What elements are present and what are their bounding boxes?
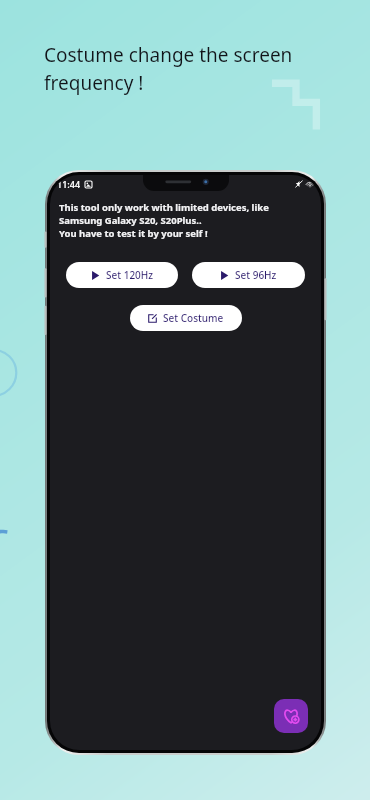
button[interactable]: Set 120Hz: [66, 262, 178, 288]
staticText: Set 96Hz: [235, 268, 277, 282]
staticText: Set Costume: [163, 311, 224, 325]
button[interactable]: Add to favorites: [274, 699, 308, 733]
staticText: 11:44: [57, 178, 81, 190]
staticText: Set 120Hz: [106, 268, 154, 282]
staticText: This tool only work with limited devices…: [59, 201, 269, 240]
button[interactable]: Set 96Hz: [192, 262, 305, 288]
staticText: Costume change the screen frequency !: [44, 42, 293, 96]
button[interactable]: Set Costume: [130, 305, 242, 331]
